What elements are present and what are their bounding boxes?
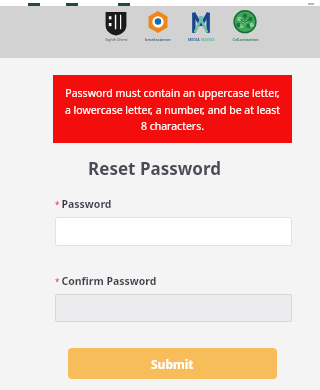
staticText: MEDIA [188, 37, 200, 42]
staticText: * Confirm Password [55, 274, 157, 288]
button[interactable]: Partner logo [142, 10, 174, 42]
staticText: Password must contain an uppercase lette… [63, 86, 282, 133]
staticText: Eighth Chime [105, 37, 128, 42]
staticText: * Password [55, 197, 112, 211]
staticText: MATRIX [201, 37, 215, 42]
button[interactable]: Partner logo [184, 10, 218, 42]
button[interactable]: Submit [68, 348, 277, 379]
button[interactable] [55, 294, 292, 322]
staticText: Reset Password [88, 157, 221, 180]
staticText: Submit [151, 356, 194, 372]
button[interactable]: Partner logo [100, 10, 132, 42]
staticText: CelLumination [232, 37, 259, 42]
button[interactable] [55, 217, 292, 246]
button[interactable]: Password must contain an uppercase lette… [53, 75, 292, 143]
staticText: breakscanner [145, 37, 171, 42]
button[interactable]: Partner logo [228, 10, 262, 42]
